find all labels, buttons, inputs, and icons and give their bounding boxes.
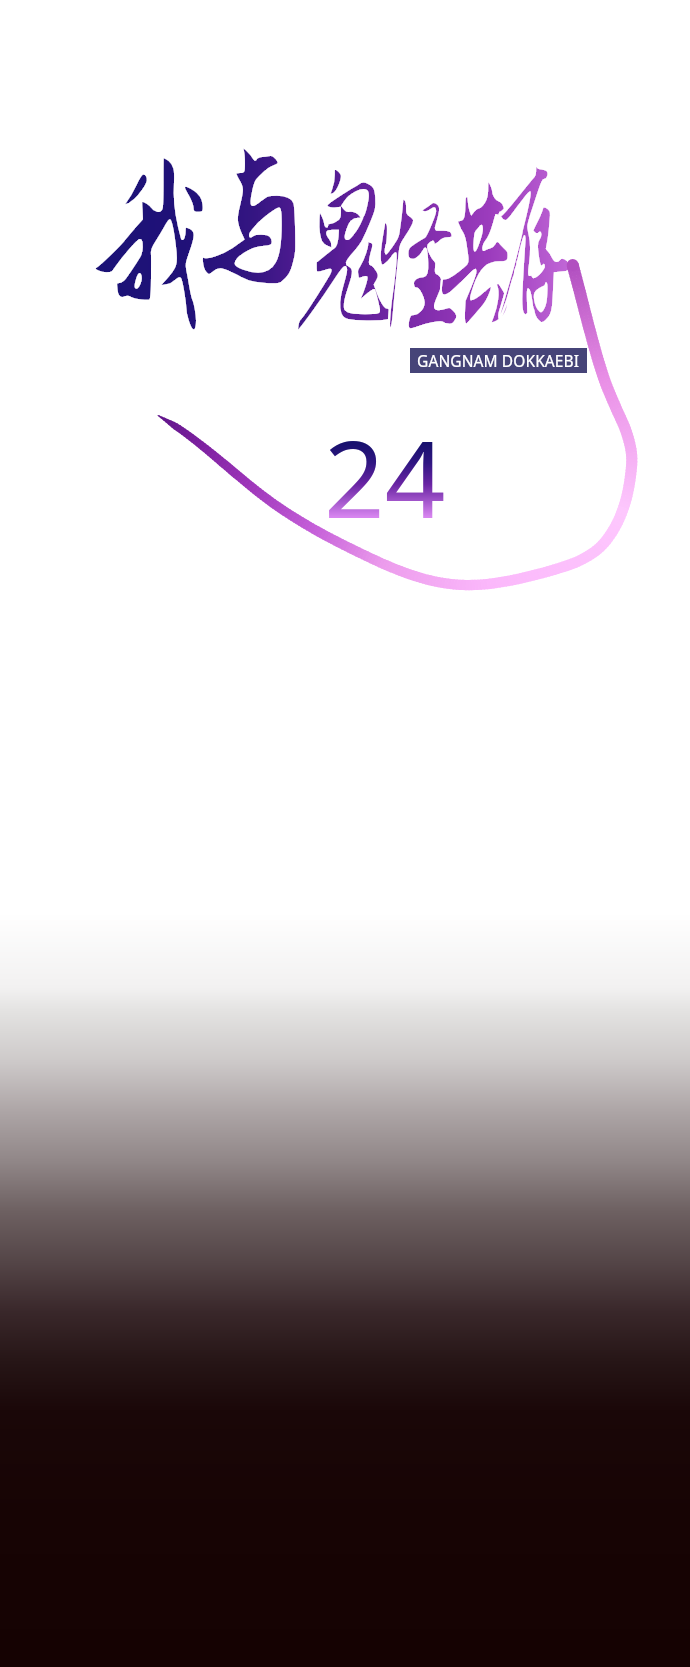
staticText: 怪: [368, 163, 470, 372]
staticText: 共: [432, 140, 518, 374]
staticText: 存: [496, 140, 573, 356]
staticText: 鬼: [290, 161, 401, 345]
staticText: 共: [432, 140, 518, 374]
staticText: GANGNAM DOKKAEBI: [417, 350, 580, 371]
staticText: 鬼: [290, 161, 401, 345]
button[interactable]: GANGNAM DOKKAEBI: [410, 348, 587, 373]
staticText: 我: [85, 148, 214, 347]
staticText: 存: [496, 140, 573, 356]
staticText: 与: [170, 103, 329, 337]
staticText: 我: [85, 148, 214, 347]
staticText: 24: [324, 405, 446, 549]
staticText: 与: [170, 103, 329, 337]
staticText: 怪: [368, 163, 470, 372]
